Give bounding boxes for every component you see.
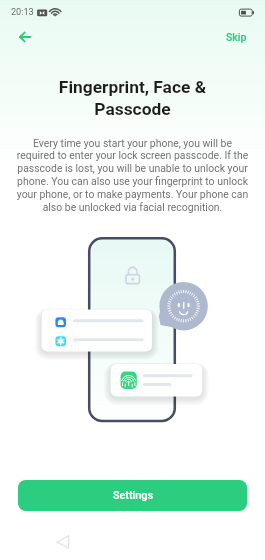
staticText: Fingerprint, Face & Passcode — [20, 77, 245, 120]
button[interactable]: Settings — [18, 480, 247, 511]
staticText: Settings — [113, 489, 153, 502]
staticText: Every time you start your phone, you wil… — [16, 137, 249, 214]
button[interactable]: Back — [13, 25, 37, 49]
button[interactable]: Skip — [226, 31, 247, 43]
staticText: 20:13 — [11, 7, 34, 18]
staticText: Skip — [226, 31, 247, 43]
button[interactable]: Back — [53, 532, 73, 552]
